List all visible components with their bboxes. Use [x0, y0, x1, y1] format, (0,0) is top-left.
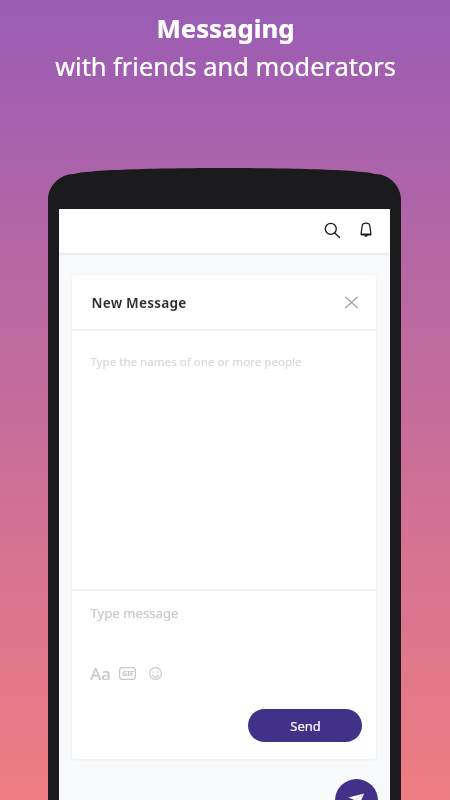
staticText: with friends and moderators	[55, 49, 396, 84]
staticText: Send	[290, 717, 321, 735]
staticText: Messaging	[156, 10, 295, 45]
staticText: Type message	[90, 604, 179, 622]
button[interactable]: New message	[335, 779, 378, 800]
button[interactable]: Search	[315, 212, 350, 247]
staticText: New Message	[91, 294, 187, 312]
button[interactable]: Notifications	[348, 212, 383, 247]
button[interactable]: Send	[248, 709, 362, 742]
button[interactable]: Close	[338, 289, 364, 315]
staticText: GIF	[122, 669, 134, 679]
staticText: Aa	[90, 662, 111, 685]
staticText: Type the names of one or more people	[90, 354, 302, 370]
button[interactable]: New Message	[72, 275, 376, 329]
